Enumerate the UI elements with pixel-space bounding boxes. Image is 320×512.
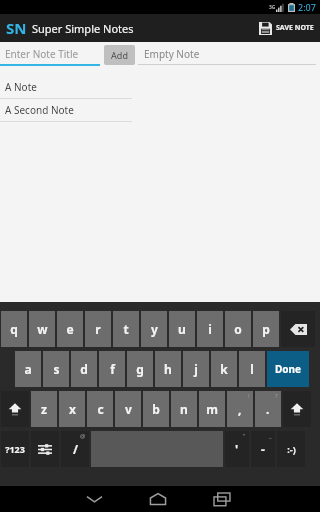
button[interactable]: x [59,391,85,427]
button[interactable]: v [115,391,141,427]
staticText: / [73,441,78,457]
button[interactable]: Shift [283,391,311,427]
button[interactable]: Backspace [281,311,315,347]
button[interactable]: q [1,311,27,347]
staticText: @ [80,432,86,440]
staticText: u [178,321,186,337]
staticText: q [10,321,18,337]
button[interactable]: . [255,391,281,427]
staticText: n [180,401,188,417]
staticText: Empty Note [144,47,200,61]
staticText: l [250,361,254,377]
staticText: ?123 [5,443,25,455]
button[interactable]: r [85,311,111,347]
button[interactable]: z [31,391,57,427]
staticText: _ [269,432,272,440]
staticText: k [220,361,228,377]
button[interactable]: A Second Note [0,99,138,122]
staticText: " [243,432,246,440]
staticText: . [266,401,270,417]
button[interactable]: - [251,431,275,467]
staticText: s [53,361,60,377]
button[interactable]: Input options [31,431,59,467]
staticText: h [164,361,172,377]
button[interactable]: Enter Note Title [0,44,100,66]
staticText: ! [248,392,250,400]
staticText: m [206,401,218,417]
other: Save note [259,22,272,35]
staticText: b [152,401,160,417]
staticText: t [123,321,129,337]
staticText: i [208,321,212,337]
button[interactable]: :-) [277,431,305,467]
staticText: Done [275,362,302,376]
button[interactable]: Hide keyboard [62,486,126,512]
staticText: v [125,401,132,417]
staticText: g [136,361,144,377]
staticText: y [151,321,158,337]
button[interactable]: Save note [253,14,320,42]
button[interactable]: j [183,351,209,387]
button[interactable]: i [197,311,223,347]
staticText: A Note [5,80,37,94]
staticText: r [95,321,101,337]
staticText: SN [6,18,27,38]
button[interactable]: ?123 [1,431,29,467]
staticText: a [24,361,32,377]
button[interactable]: a [15,351,41,387]
button[interactable]: ' [225,431,249,467]
staticText: Super Simple Notes [32,21,134,36]
button[interactable]: m [199,391,225,427]
button[interactable]: b [143,391,169,427]
staticText: p [262,321,270,337]
button[interactable]: f [99,351,125,387]
button[interactable]: , [227,391,253,427]
button[interactable]: t [113,311,139,347]
button[interactable]: n [171,391,197,427]
staticText: Enter Note Title [5,47,79,61]
button[interactable]: u [169,311,195,347]
staticText: c [97,401,104,417]
button[interactable]: g [127,351,153,387]
button[interactable]: / [61,431,89,467]
staticText: ? [275,392,278,400]
button[interactable]: y [141,311,167,347]
button[interactable]: Home [126,486,190,512]
staticText: 3G [269,4,276,11]
button[interactable]: Recent apps [190,486,254,512]
button[interactable]: e [57,311,83,347]
staticText: z [41,401,47,417]
staticText: A Second Note [5,103,74,117]
staticText: j [194,361,198,377]
button[interactable]: w [29,311,55,347]
staticText: o [234,321,242,337]
staticText: 2:07 [298,1,316,13]
button[interactable]: Shift [1,391,29,427]
staticText: f [110,361,115,377]
staticText: e [66,321,74,337]
button[interactable]: o [225,311,251,347]
button[interactable]: k [211,351,237,387]
button[interactable]: Add [104,45,135,65]
button[interactable]: Empty Note [138,45,316,65]
staticText: ' [235,441,239,457]
staticText: Add [111,49,128,61]
button[interactable]: c [87,391,113,427]
staticText: - [261,441,265,457]
staticText: x [69,401,76,417]
button[interactable]: d [71,351,97,387]
staticText: w [37,321,48,337]
button[interactable]: l [239,351,265,387]
staticText: d [80,361,88,377]
button[interactable]: Done [267,351,309,387]
staticText: , [238,401,242,417]
button[interactable]: h [155,351,181,387]
button[interactable]: s [43,351,69,387]
staticText: SAVE NOTE [276,23,314,33]
button[interactable]: A Note [0,76,138,99]
button[interactable]: p [253,311,279,347]
staticText: :-) [287,443,296,455]
